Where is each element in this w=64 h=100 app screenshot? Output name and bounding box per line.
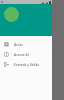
other: Acerca de [4, 52, 9, 57]
other: Entrada y Salida [4, 62, 9, 67]
button[interactable]: Acerca de [0, 49, 52, 59]
staticText: Entrada y Salida [14, 62, 40, 66]
other: Áreas [4, 42, 9, 47]
staticText: Áreas [14, 42, 23, 46]
button[interactable] [0, 4, 52, 36]
button[interactable]: Entrada y Salida [0, 59, 52, 69]
button[interactable]: Áreas [0, 39, 52, 49]
staticText: Acerca de [14, 52, 30, 56]
